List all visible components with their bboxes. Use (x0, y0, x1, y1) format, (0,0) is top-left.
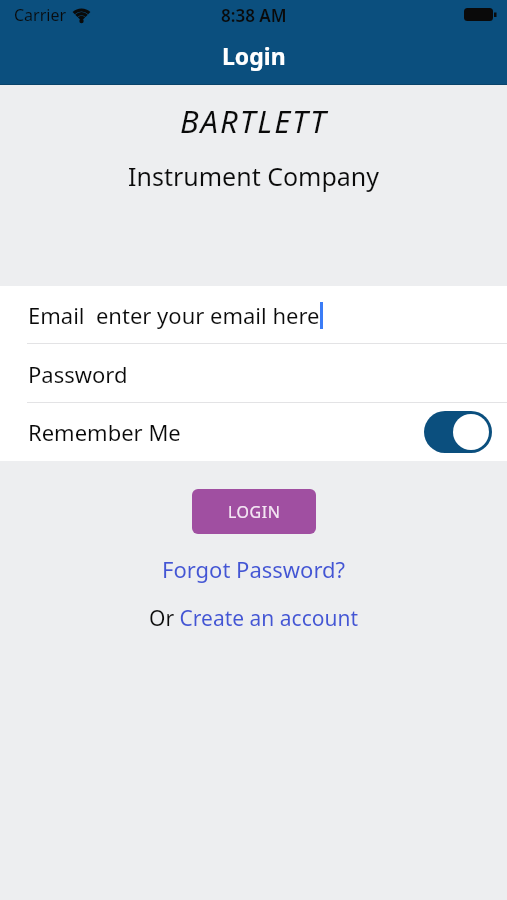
staticText: 8:38 AM (221, 4, 287, 27)
button[interactable]: LOGIN (192, 489, 316, 534)
staticText: Password (28, 359, 128, 389)
button[interactable]: Email enter your email here (0, 286, 507, 344)
button[interactable]: Or Create an account (149, 604, 358, 633)
staticText: Email enter your email here (28, 300, 320, 330)
staticText: LOGIN (228, 501, 281, 523)
staticText: Login (222, 40, 286, 71)
button[interactable]: Password (0, 344, 507, 403)
staticText: Carrier (14, 4, 67, 26)
button[interactable]: Forgot Password? (162, 554, 346, 584)
staticText: Forgot Password? (162, 554, 346, 584)
staticText: Remember Me (28, 417, 181, 447)
staticText: Instrument Company (128, 159, 380, 193)
button[interactable] (424, 411, 492, 453)
staticText: Or Create an account (149, 604, 358, 633)
staticText: BARTLETT (180, 100, 328, 142)
